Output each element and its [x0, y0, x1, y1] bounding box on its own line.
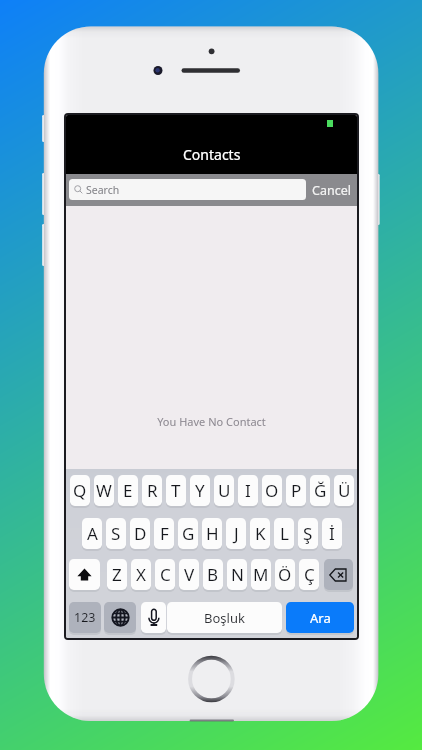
staticText: Z	[112, 563, 122, 586]
button[interactable]: V	[179, 559, 199, 590]
staticText: I	[245, 479, 251, 502]
staticText: Cancel	[312, 182, 351, 199]
staticText: B	[207, 563, 219, 586]
staticText: O	[265, 479, 279, 502]
button[interactable]: P	[286, 475, 306, 506]
button[interactable]: J	[226, 518, 246, 549]
button[interactable]: L	[274, 518, 294, 549]
button[interactable]: U	[214, 475, 234, 506]
button[interactable]: D	[130, 518, 150, 549]
button[interactable]: Ş	[298, 518, 318, 549]
button[interactable]	[69, 559, 100, 590]
other: Voice input	[141, 602, 166, 634]
staticText: Ş	[303, 522, 313, 545]
button[interactable]: İ	[322, 518, 342, 549]
staticText: Ü	[338, 479, 351, 502]
staticText: U	[218, 479, 231, 502]
button[interactable]: Ö	[275, 559, 295, 590]
staticText: Ç	[304, 563, 315, 586]
button[interactable]: Y	[190, 475, 210, 506]
staticText: M	[253, 563, 269, 586]
button[interactable]: Boşluk	[167, 602, 282, 633]
button[interactable]: S	[106, 518, 126, 549]
button[interactable]: X	[131, 559, 151, 590]
staticText: D	[134, 522, 147, 545]
button[interactable]	[141, 602, 166, 633]
button[interactable]: R	[142, 475, 162, 506]
staticText: N	[231, 563, 244, 586]
staticText: Contacts	[183, 145, 241, 164]
button[interactable]: Ğ	[310, 475, 330, 506]
button[interactable]: O	[262, 475, 282, 506]
button[interactable]: T	[166, 475, 186, 506]
other: Backspace	[324, 559, 353, 591]
button[interactable]: Z	[107, 559, 127, 590]
staticText: L	[280, 522, 289, 545]
staticText: R	[147, 479, 158, 502]
staticText: Q	[73, 479, 87, 502]
button[interactable]: A	[82, 518, 102, 549]
staticText: J	[234, 522, 239, 545]
staticText: G	[182, 522, 195, 545]
staticText: C	[160, 563, 171, 586]
button[interactable]: Ü	[334, 475, 354, 506]
button[interactable]: N	[227, 559, 247, 590]
button[interactable]: M	[251, 559, 271, 590]
button[interactable]: C	[155, 559, 175, 590]
staticText: Search	[86, 183, 120, 197]
staticText: A	[87, 522, 98, 545]
button[interactable]: W	[94, 475, 114, 506]
staticText: H	[206, 522, 219, 545]
staticText: Ö	[278, 563, 292, 586]
button[interactable]: Ç	[299, 559, 319, 590]
button[interactable]: I	[238, 475, 258, 506]
staticText: W	[96, 479, 112, 502]
staticText: S	[111, 522, 121, 545]
staticText: 123	[74, 609, 96, 626]
button[interactable]: H	[202, 518, 222, 549]
button[interactable]: B	[203, 559, 223, 590]
button[interactable]: G	[178, 518, 198, 549]
staticText: F	[160, 522, 169, 545]
staticText: Ara	[310, 609, 331, 627]
button[interactable]: 123	[69, 602, 101, 633]
staticText: E	[123, 479, 133, 502]
button[interactable]: K	[250, 518, 270, 549]
button[interactable]	[104, 602, 136, 633]
button[interactable]: Q	[70, 475, 90, 506]
other: Change keyboard	[104, 602, 136, 634]
button[interactable]: F	[154, 518, 174, 549]
staticText: X	[136, 563, 146, 586]
staticText: K	[255, 522, 266, 545]
button[interactable]: Search	[69, 179, 306, 200]
staticText: T	[171, 479, 181, 502]
staticText: İ	[329, 522, 335, 545]
staticText: Boşluk	[204, 609, 245, 627]
staticText: P	[291, 479, 302, 502]
staticText: You Have No Contact	[157, 414, 266, 429]
other: Shift	[69, 559, 100, 591]
staticText: Ğ	[314, 479, 327, 502]
staticText: V	[184, 563, 195, 586]
button[interactable]	[324, 559, 353, 590]
button[interactable]: Cancel	[309, 174, 353, 206]
staticText: Y	[195, 479, 205, 502]
button[interactable]: Ara	[286, 602, 354, 633]
button[interactable]: E	[118, 475, 138, 506]
